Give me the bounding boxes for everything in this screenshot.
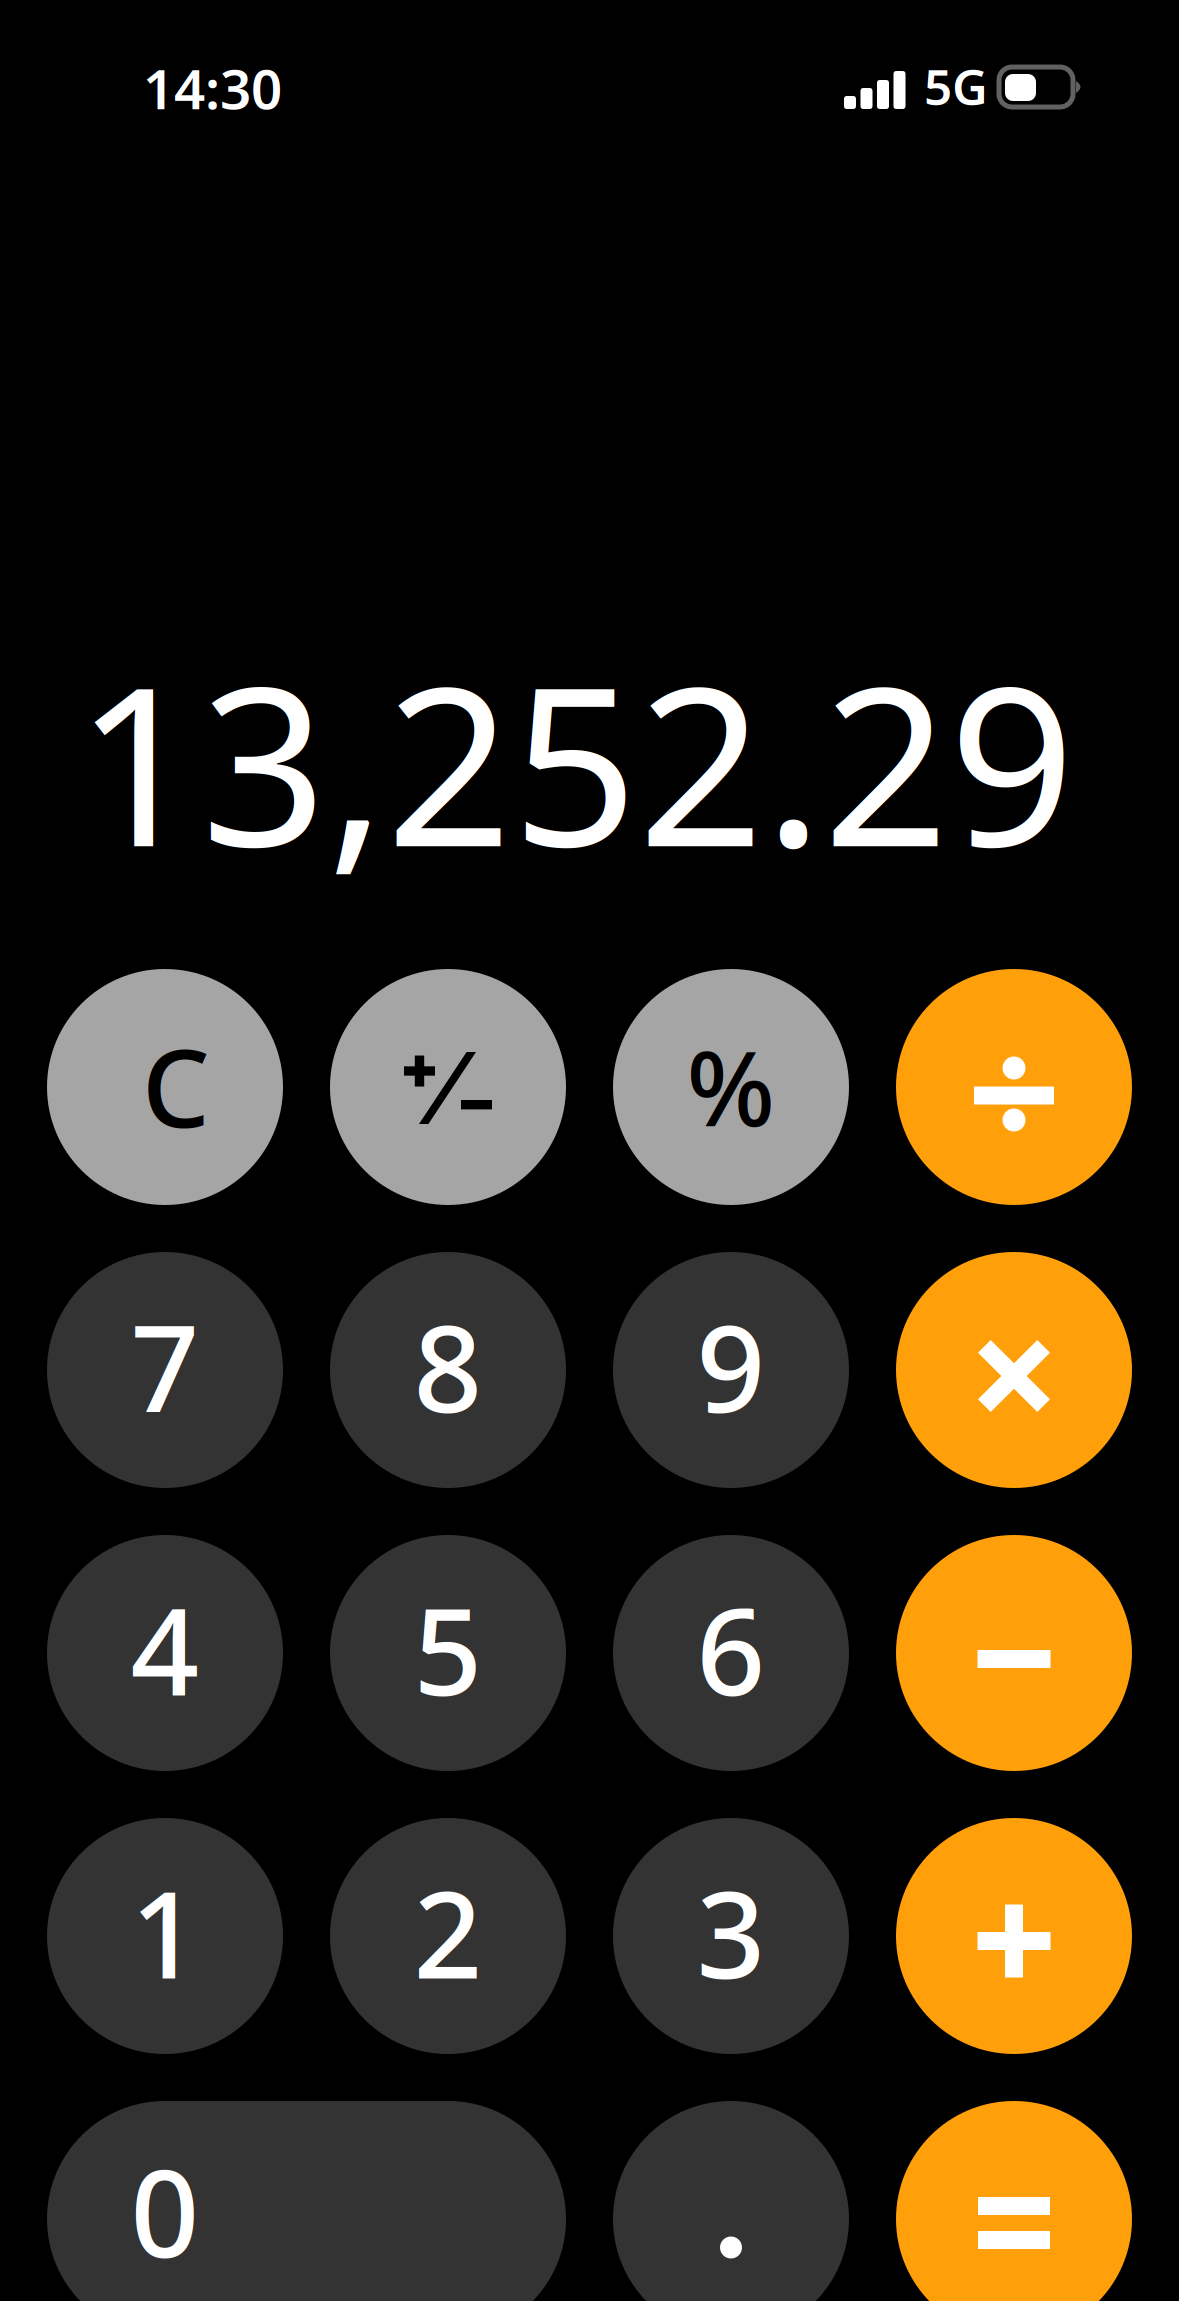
- staticText: 0: [130, 2131, 199, 2291]
- button[interactable]: Subtract: [896, 1535, 1132, 1771]
- staticText: 3: [696, 1852, 765, 2012]
- button[interactable]: 5: [330, 1535, 566, 1771]
- button[interactable]: 0: [47, 2101, 566, 2301]
- button[interactable]: 6: [613, 1535, 849, 1771]
- staticText: 13,252.29: [75, 615, 1075, 907]
- button[interactable]: C: [47, 969, 283, 1205]
- button[interactable]: %: [613, 969, 849, 1205]
- staticText: 8: [413, 1286, 482, 1446]
- button[interactable]: Plus minus: [330, 969, 566, 1205]
- staticText: 4: [130, 1569, 199, 1729]
- button[interactable]: Divide: [896, 969, 1132, 1205]
- staticText: 2: [413, 1852, 482, 2012]
- button[interactable]: 4: [47, 1535, 283, 1771]
- staticText: 7: [130, 1286, 199, 1446]
- button[interactable]: Multiply: [896, 1252, 1132, 1488]
- button[interactable]: Decimal point: [613, 2101, 849, 2301]
- button[interactable]: 1: [47, 1818, 283, 2054]
- staticText: 5: [413, 1569, 482, 1729]
- button[interactable]: 9: [613, 1252, 849, 1488]
- button[interactable]: 3: [613, 1818, 849, 2054]
- staticText: 5G: [924, 53, 988, 119]
- button[interactable]: Add: [896, 1818, 1132, 2054]
- button[interactable]: 8: [330, 1252, 566, 1488]
- staticText: %: [686, 1017, 775, 1155]
- staticText: C: [142, 1015, 210, 1157]
- staticText: 6: [696, 1569, 765, 1729]
- button[interactable]: Equals: [896, 2101, 1132, 2301]
- button[interactable]: 2: [330, 1818, 566, 2054]
- staticText: 9: [696, 1286, 765, 1446]
- staticText: 14:30: [143, 52, 282, 124]
- button[interactable]: 7: [47, 1252, 283, 1488]
- staticText: 1: [130, 1852, 199, 2012]
